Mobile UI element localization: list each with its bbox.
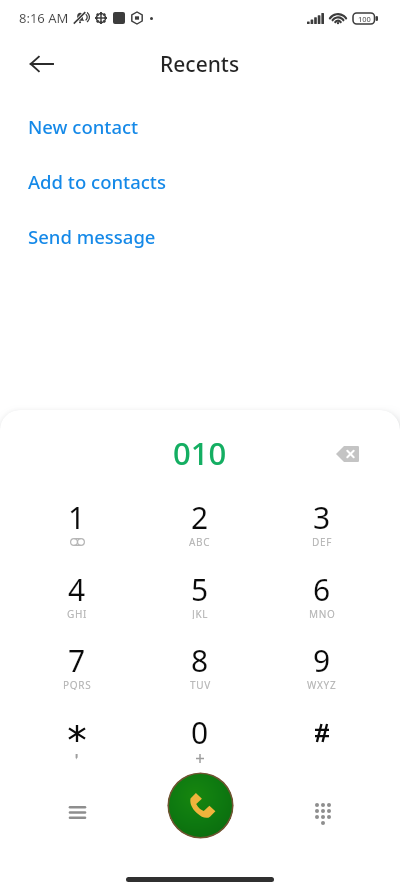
staticText: DEF: [312, 535, 333, 547]
button[interactable]: New contact: [0, 99, 400, 154]
button[interactable]: 8: [145, 632, 255, 698]
button[interactable]: 6: [267, 561, 377, 627]
staticText: PQRS: [63, 678, 92, 690]
staticText: ABC: [189, 535, 211, 547]
staticText: 4: [68, 569, 86, 610]
staticText: GHI: [67, 607, 88, 619]
staticText: Add to contacts: [28, 169, 166, 194]
staticText: 7: [68, 640, 86, 681]
staticText: WXYZ: [307, 678, 337, 690]
button[interactable]: Send message: [0, 209, 400, 264]
staticText: JKL: [192, 607, 209, 619]
button[interactable]: 9: [267, 632, 377, 698]
staticText: 6: [313, 569, 331, 610]
staticText: 2: [191, 497, 209, 538]
staticText: New contact: [28, 114, 139, 139]
button[interactable]: Dialpad: [304, 794, 342, 832]
button[interactable]: Add to contacts: [0, 154, 400, 209]
staticText: 010: [173, 432, 227, 474]
button[interactable]: Backspace: [329, 436, 365, 472]
staticText: 1: [68, 497, 86, 538]
button[interactable]: [267, 704, 377, 770]
staticText: 9: [313, 640, 331, 681]
button[interactable]: 5: [145, 561, 255, 627]
staticText: MNO: [309, 607, 336, 619]
button[interactable]: Call: [167, 772, 234, 839]
staticText: 8: [191, 640, 209, 681]
staticText: Send message: [28, 224, 156, 249]
button[interactable]: Back: [23, 46, 59, 82]
button[interactable]: 4: [22, 561, 132, 627]
button[interactable]: 0: [145, 704, 255, 770]
staticText: 0: [191, 712, 209, 753]
button[interactable]: 7: [22, 632, 132, 698]
button[interactable]: 1: [22, 489, 132, 555]
staticText: 5: [191, 569, 209, 610]
button[interactable]: 2: [145, 489, 255, 555]
button[interactable]: 3: [267, 489, 377, 555]
staticText: 8:16 AM: [19, 9, 69, 27]
button[interactable]: [22, 704, 132, 770]
staticText: Recents: [160, 50, 240, 79]
staticText: TUV: [190, 678, 211, 690]
staticText: 3: [313, 497, 331, 538]
staticText: 100: [358, 14, 371, 24]
button[interactable]: Menu: [58, 793, 96, 831]
